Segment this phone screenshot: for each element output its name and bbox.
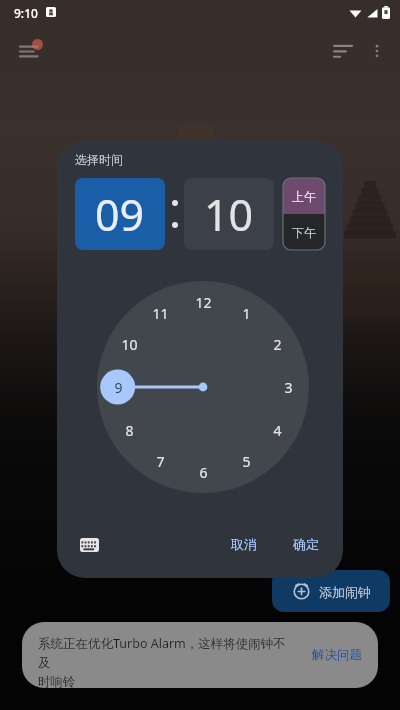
staticText: 4: [273, 421, 282, 440]
staticText: 3: [284, 378, 293, 397]
staticText: 7: [156, 452, 165, 471]
button[interactable]: 下午: [283, 214, 325, 250]
staticText: 取消: [231, 536, 257, 552]
staticText: 2: [273, 335, 282, 354]
staticText: 上午: [292, 189, 316, 204]
button[interactable]: 09: [75, 178, 165, 250]
button[interactable]: 1: [97, 281, 309, 493]
staticText: 系统正在优化Turbo Alarm，这样将使闹钟不及 时响铃: [38, 635, 288, 688]
button[interactable]: Sort: [326, 34, 360, 68]
button[interactable]: 解决问题: [306, 641, 368, 669]
staticText: 6: [199, 463, 208, 482]
staticText: 09: [95, 185, 145, 244]
staticText: 8: [125, 421, 134, 440]
staticText: 9: [114, 378, 123, 397]
staticText: 1: [242, 304, 251, 323]
staticText: 9:10: [14, 5, 38, 21]
staticText: 10: [121, 335, 138, 354]
button[interactable]: 10: [184, 178, 274, 250]
button[interactable]: 取消: [217, 527, 271, 561]
button[interactable]: More options: [360, 34, 394, 68]
staticText: 添加闹钟: [319, 584, 371, 600]
button[interactable]: 确定: [279, 527, 333, 561]
button[interactable]: Alarms list: [12, 34, 46, 68]
staticText: 12: [195, 293, 212, 312]
staticText: 11: [152, 304, 169, 323]
staticText: 解决问题: [312, 647, 362, 663]
staticText: 下午: [292, 225, 316, 240]
button[interactable]: 上午: [283, 178, 325, 214]
button[interactable]: Switch to text input: [71, 527, 107, 563]
staticText: 确定: [293, 536, 319, 552]
staticText: 5: [242, 452, 251, 471]
staticText: 10: [204, 185, 254, 244]
staticText: 选择时间: [75, 152, 123, 167]
button[interactable]: 添加闹钟: [272, 570, 390, 612]
